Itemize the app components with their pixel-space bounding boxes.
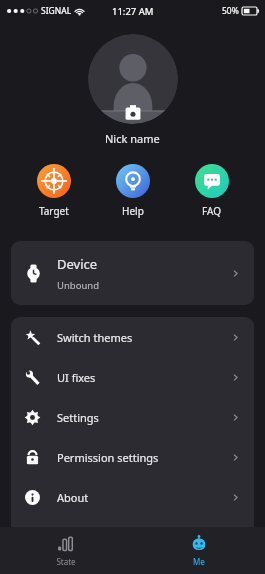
- staticText: State: [56, 556, 76, 567]
- staticText: Permission settings: [57, 450, 230, 465]
- button[interactable]: Permission settings: [11, 437, 254, 477]
- staticText: Unbound: [57, 279, 99, 292]
- button[interactable]: State: [0, 527, 132, 574]
- staticText: Help: [122, 204, 144, 218]
- staticText: 50%: [222, 5, 239, 17]
- button[interactable]: Device: [11, 241, 254, 305]
- staticText: Settings: [57, 410, 230, 425]
- button[interactable]: FAQ: [172, 164, 251, 218]
- button[interactable]: About: [11, 477, 254, 517]
- button[interactable]: Change avatar: [88, 34, 178, 124]
- button[interactable]: Settings: [11, 397, 254, 437]
- button[interactable]: Me: [132, 527, 265, 574]
- staticText: 11:27 AM: [112, 5, 154, 18]
- staticText: Nick name: [105, 131, 160, 146]
- staticText: Switch themes: [57, 330, 230, 345]
- staticText: SIGNAL: [41, 5, 72, 17]
- button[interactable]: Target: [14, 164, 93, 218]
- staticText: About: [57, 490, 230, 505]
- button[interactable]: Switch themes: [11, 317, 254, 357]
- staticText: Target: [39, 204, 69, 218]
- button[interactable]: UI fixes: [11, 357, 254, 397]
- staticText: FAQ: [202, 204, 221, 218]
- staticText: Device: [57, 255, 98, 273]
- button[interactable]: Help: [93, 164, 172, 218]
- staticText: UI fixes: [57, 370, 230, 385]
- staticText: Me: [193, 556, 205, 567]
